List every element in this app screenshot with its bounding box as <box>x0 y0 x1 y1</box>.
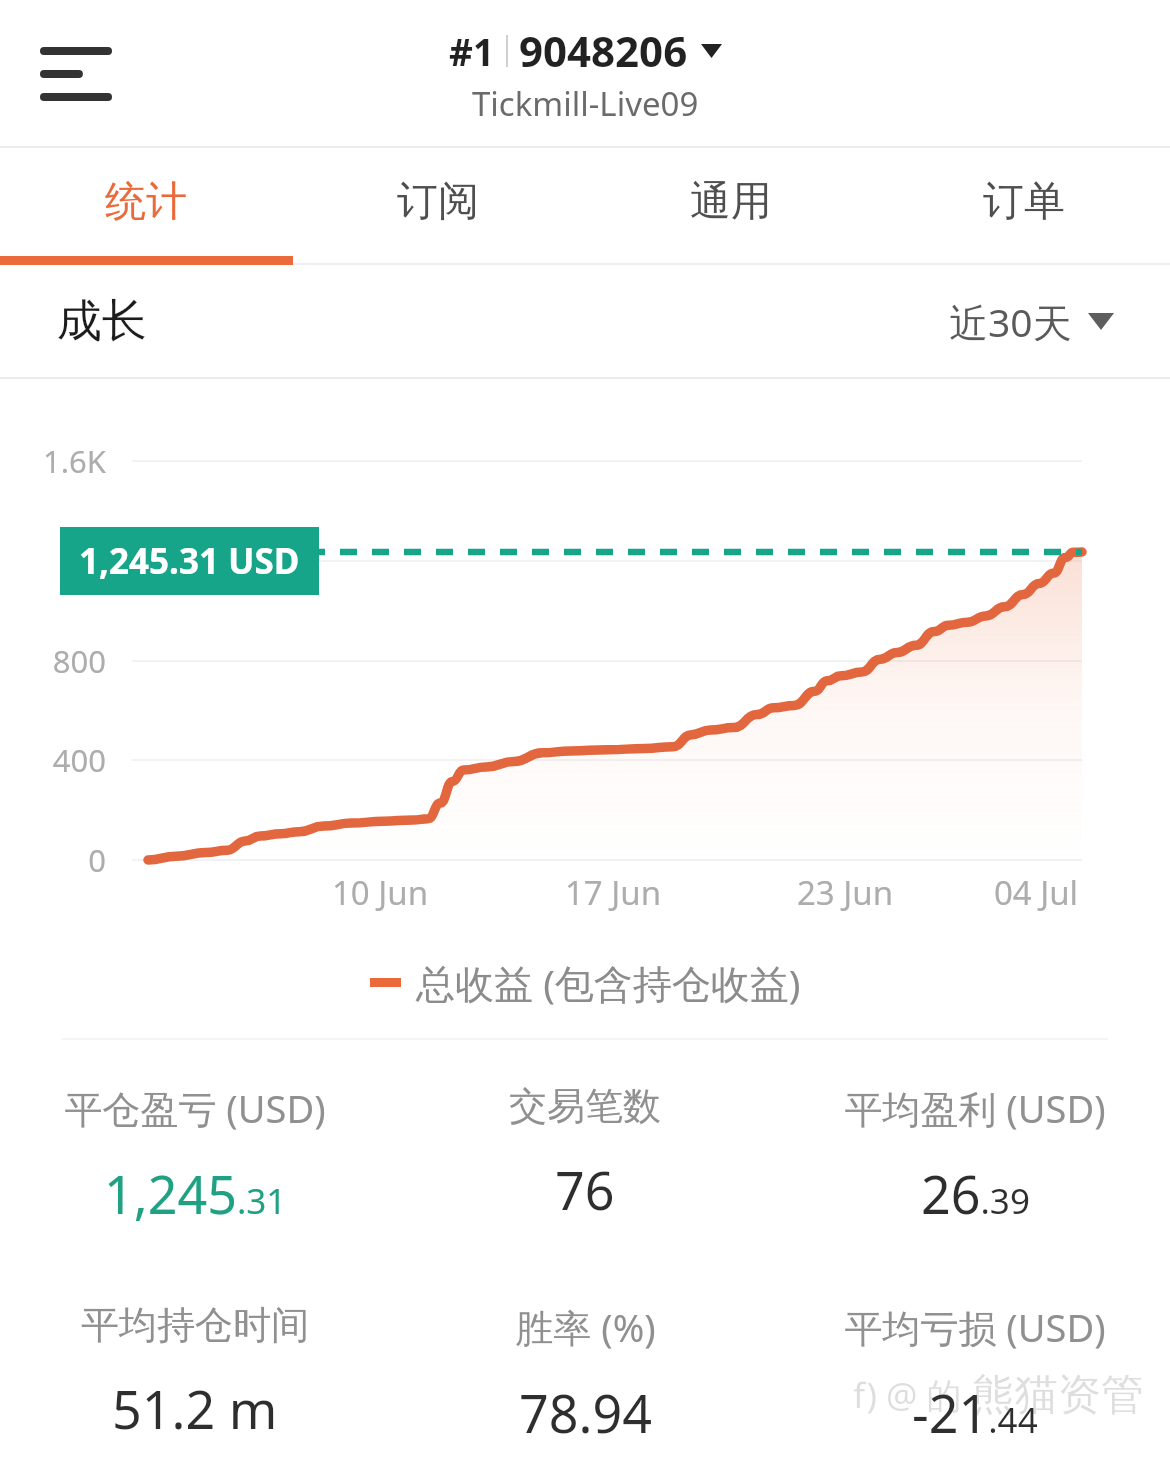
button[interactable]: 平均持仓时间 <box>0 1301 390 1444</box>
staticText: 通用 <box>690 176 772 228</box>
button[interactable]: #1 <box>449 22 722 126</box>
staticText: 成长 <box>57 293 147 350</box>
staticText: -21.44 <box>912 1377 1038 1448</box>
staticText: 1,245.31 <box>104 1158 287 1229</box>
staticText: 近30天 <box>949 295 1072 348</box>
button[interactable]: 平均盈利 (USD) <box>780 1082 1170 1229</box>
staticText: 78.94 <box>519 1377 652 1448</box>
staticText: 交易笔数 <box>509 1082 661 1130</box>
staticText: 400 <box>0 739 106 781</box>
staticText: f) @ 的 <box>853 1371 962 1419</box>
button[interactable]: 统计 <box>0 148 292 256</box>
staticText: 平均亏损 (USD) <box>844 1301 1106 1353</box>
button[interactable]: 近30天 <box>949 295 1114 348</box>
staticText: 订阅 <box>397 176 479 228</box>
button[interactable]: 订阅 <box>292 148 584 256</box>
staticText: 0 <box>0 839 106 881</box>
button[interactable]: 平均亏损 (USD) <box>780 1301 1170 1448</box>
staticText: 1,245.31 USD <box>79 537 300 585</box>
staticText: 76 <box>555 1154 615 1225</box>
staticText: 800 <box>0 640 106 682</box>
staticText: #1 <box>449 26 495 76</box>
staticText: 平均持仓时间 <box>81 1301 309 1349</box>
staticText: 10 Jun <box>310 870 450 915</box>
button[interactable]: 订单 <box>877 148 1170 256</box>
staticText: 26.39 <box>921 1158 1030 1229</box>
staticText: 熊猫资管 <box>972 1368 1144 1422</box>
staticText: 9048206 <box>519 22 688 79</box>
button[interactable]: 平仓盈亏 (USD) <box>0 1082 390 1229</box>
staticText: 51.2 m <box>112 1373 278 1444</box>
staticText: 1.6K <box>0 440 106 482</box>
staticText: 统计 <box>105 176 187 228</box>
staticText: 订单 <box>983 176 1065 228</box>
button[interactable]: 1,245.31 USD <box>79 537 300 585</box>
staticText: 平仓盈亏 (USD) <box>64 1082 326 1134</box>
staticText: 总收益 (包含持仓收益) <box>416 956 801 1009</box>
staticText: 胜率 (%) <box>515 1301 656 1353</box>
staticText: 平均盈利 (USD) <box>844 1082 1106 1134</box>
button[interactable]: 胜率 (%) <box>390 1301 780 1448</box>
button[interactable]: Open navigation menu <box>18 16 134 132</box>
button[interactable]: 交易笔数 <box>390 1082 780 1225</box>
staticText: 23 Jun <box>775 870 915 915</box>
staticText: 17 Jun <box>543 870 683 915</box>
staticText: 04 Jul <box>966 870 1106 915</box>
button[interactable]: 通用 <box>584 148 877 256</box>
staticText: Tickmill-Live09 <box>472 81 699 126</box>
